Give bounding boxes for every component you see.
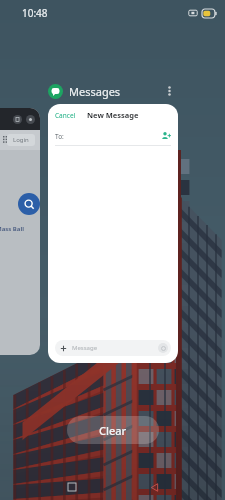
button[interactable]: Cancel: [55, 111, 76, 120]
staticText: New Message: [87, 110, 139, 120]
staticText: To:: [55, 132, 64, 141]
button[interactable]: Login: [13, 136, 29, 144]
button[interactable]: More options: [160, 82, 178, 100]
button[interactable]: Login: [0, 108, 40, 355]
staticText: Messages: [69, 84, 121, 99]
button[interactable]: Recent apps: [54, 474, 90, 500]
staticText: Mass Ball: [0, 225, 24, 233]
button[interactable]: Clear: [67, 416, 159, 444]
other: Add contact: [161, 131, 171, 141]
staticText: Clear: [99, 423, 127, 438]
button[interactable]: To:: [55, 126, 171, 146]
button[interactable]: Search: [18, 193, 40, 215]
staticText: Message: [72, 344, 98, 352]
button[interactable]: Back: [136, 474, 172, 500]
button[interactable]: Message: [55, 340, 171, 356]
button[interactable]: Cancel: [48, 104, 178, 363]
staticText: 10:48: [22, 6, 48, 20]
button[interactable]: Send: [158, 343, 168, 353]
staticText: Login: [13, 136, 29, 144]
